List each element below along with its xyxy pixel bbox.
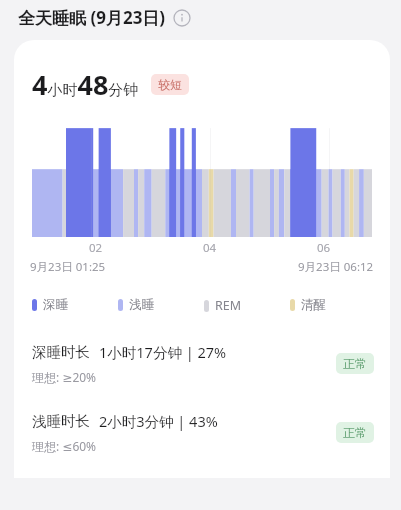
- staticText: 06: [317, 240, 331, 256]
- staticText: 正常: [343, 425, 367, 440]
- staticText: 理想: ≤60%: [32, 438, 97, 454]
- button[interactable]: 正常: [336, 353, 374, 374]
- staticText: 较短: [158, 77, 182, 92]
- staticText: 02: [89, 240, 103, 256]
- staticText: 正常: [343, 356, 367, 371]
- staticText: 深睡: [43, 297, 68, 313]
- button[interactable]: 正常: [336, 422, 374, 443]
- staticText: 2小时3分钟 | 43%: [99, 411, 218, 431]
- staticText: 浅睡时长: [32, 412, 90, 430]
- button[interactable]: 深睡: [32, 297, 118, 313]
- staticText: 理想: ≥20%: [32, 369, 97, 385]
- button[interactable]: 浅睡: [118, 297, 204, 313]
- staticText: 4小时48分钟: [32, 66, 139, 103]
- staticText: 1小时17分钟 | 27%: [99, 342, 227, 362]
- staticText: 全天睡眠 (9月23日): [18, 6, 166, 29]
- staticText: 浅睡: [129, 297, 154, 313]
- button[interactable]: 浅睡时长: [14, 411, 390, 454]
- staticText: 9月23日 01:25: [30, 259, 106, 275]
- button[interactable]: 深睡时长: [14, 342, 390, 385]
- staticText: 深睡时长: [32, 343, 90, 361]
- staticText: 9月23日 06:12: [298, 259, 374, 275]
- staticText: 04: [203, 240, 217, 256]
- button[interactable]: Info: [173, 9, 191, 27]
- button[interactable]: REM: [204, 297, 290, 314]
- button[interactable]: 较短: [151, 74, 189, 95]
- staticText: 清醒: [301, 297, 326, 313]
- staticText: REM: [215, 297, 242, 314]
- button[interactable]: 清醒: [290, 297, 376, 313]
